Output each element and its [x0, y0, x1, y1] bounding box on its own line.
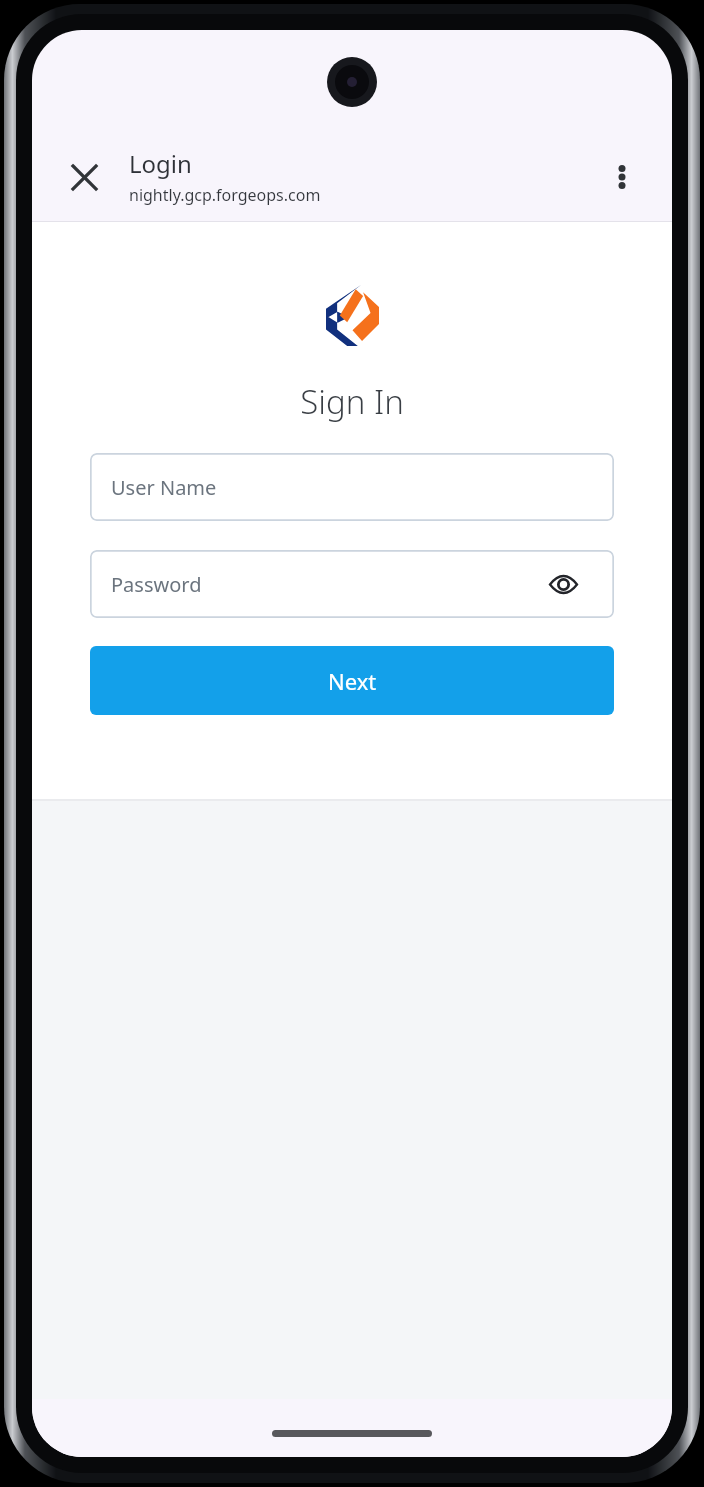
button[interactable]: Show password: [540, 561, 586, 607]
button[interactable]: Next: [90, 646, 614, 715]
staticText: Sign In: [32, 379, 672, 424]
button[interactable]: Close: [56, 149, 112, 205]
button[interactable]: More options: [594, 149, 650, 205]
button[interactable]: User Name: [90, 453, 614, 521]
staticText: nightly.gcp.forgeops.com: [129, 184, 321, 206]
staticText: Next: [328, 666, 377, 696]
staticText: Password: [111, 571, 202, 598]
button[interactable]: Password: [90, 550, 614, 618]
staticText: Login: [129, 147, 192, 180]
staticText: User Name: [111, 474, 217, 501]
